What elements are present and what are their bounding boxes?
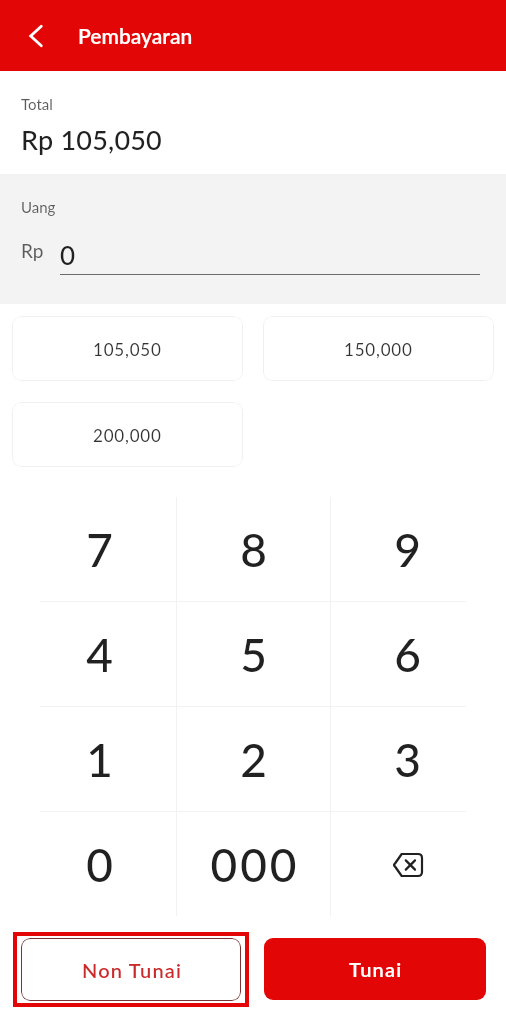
staticText: 000 (210, 837, 300, 892)
button[interactable]: Backspace (331, 812, 484, 916)
staticText: 0 (86, 837, 116, 892)
staticText: 0 (60, 239, 76, 270)
button[interactable]: 6 (331, 602, 484, 706)
staticText: Tunai (349, 957, 403, 981)
staticText: 5 (240, 627, 270, 682)
staticText: 105,050 (93, 339, 162, 359)
button[interactable]: 5 (177, 602, 330, 706)
button[interactable]: 9 (331, 497, 484, 601)
button[interactable]: 0 (22, 812, 176, 916)
staticText: 6 (394, 627, 424, 682)
staticText: 200,000 (93, 425, 162, 445)
button[interactable]: 7 (22, 497, 176, 601)
staticText: Rp 105,050 (21, 123, 162, 155)
staticText: 9 (394, 522, 424, 577)
staticText: 3 (394, 732, 424, 787)
staticText: 7 (86, 522, 116, 577)
staticText: 1 (86, 732, 116, 787)
staticText: Pembayaran (78, 23, 193, 48)
button[interactable]: 000 (177, 812, 330, 916)
staticText: 2 (240, 732, 270, 787)
staticText: Uang (21, 198, 56, 216)
staticText: 8 (240, 522, 270, 577)
button[interactable]: 1 (22, 707, 176, 811)
button[interactable]: 3 (331, 707, 484, 811)
button[interactable]: 200,000 (12, 402, 243, 467)
button[interactable]: 150,000 (263, 316, 494, 381)
staticText: 150,000 (344, 339, 413, 359)
button[interactable]: 4 (22, 602, 176, 706)
button[interactable]: 2 (177, 707, 330, 811)
button[interactable]: 8 (177, 497, 330, 601)
button[interactable]: 105,050 (12, 316, 243, 381)
button[interactable]: Tunai (264, 938, 486, 1000)
button[interactable]: Non Tunai (21, 938, 241, 1001)
staticText: Rp (21, 239, 44, 262)
button[interactable]: Back (14, 14, 58, 58)
staticText: 4 (86, 627, 116, 682)
staticText: Total (21, 95, 53, 113)
staticText: Non Tunai (82, 958, 183, 982)
